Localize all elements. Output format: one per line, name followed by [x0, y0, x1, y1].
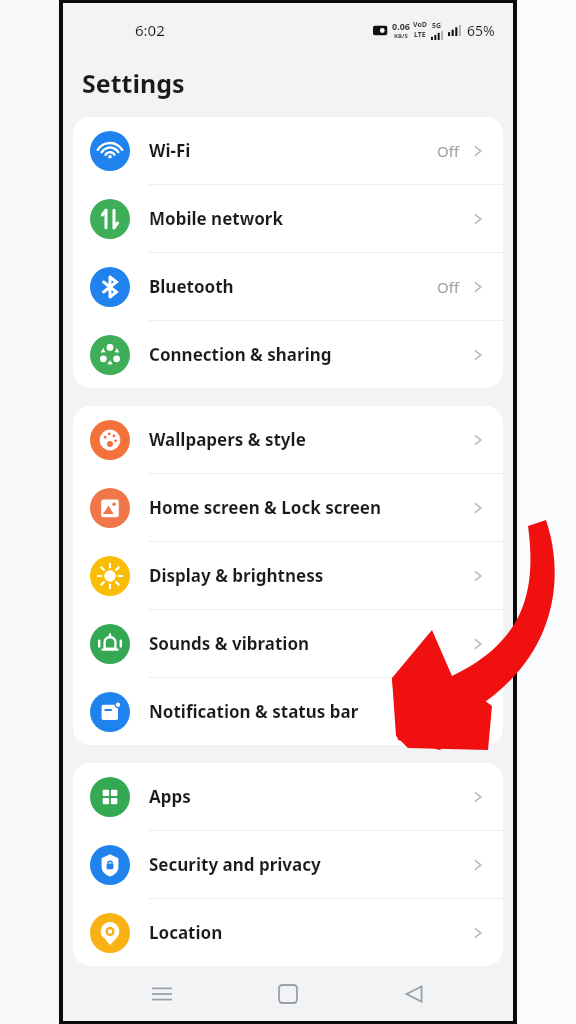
button[interactable]: Home screen & Lock screen	[73, 474, 503, 541]
button[interactable]: Bluetooth	[73, 253, 503, 320]
button[interactable]: Connection & sharing	[73, 321, 503, 388]
staticText: Wi-Fi	[149, 139, 191, 162]
button[interactable]: Apps	[73, 763, 503, 830]
button[interactable]: Display & brightness	[73, 542, 503, 609]
staticText: LTE	[414, 30, 426, 40]
button[interactable]: Sounds & vibration	[73, 610, 503, 677]
staticText: Off	[437, 277, 460, 297]
staticText: Security and privacy	[149, 853, 321, 876]
staticText: Sounds & vibration	[149, 632, 310, 655]
staticText: Bluetooth	[149, 275, 234, 298]
button[interactable]: Home	[261, 967, 315, 1021]
button[interactable]: Security and privacy	[73, 831, 503, 898]
button[interactable]: Recent apps	[135, 967, 189, 1021]
staticText: Settings	[82, 66, 185, 100]
button[interactable]: Back	[387, 967, 441, 1021]
staticText: Location	[149, 921, 223, 944]
staticText: VoD	[413, 20, 427, 30]
staticText: Connection & sharing	[149, 343, 332, 366]
staticText: 65%	[467, 21, 495, 40]
staticText: Wallpapers & style	[149, 428, 306, 451]
staticText: 0.06	[392, 20, 410, 32]
staticText: Off	[437, 141, 460, 161]
button[interactable]: Wi-Fi	[73, 117, 503, 184]
button[interactable]: Mobile network	[73, 185, 503, 252]
staticText: Mobile network	[149, 207, 284, 230]
staticText: 5G	[432, 21, 442, 31]
button[interactable]: Notification & status bar	[73, 678, 503, 745]
staticText: Home screen & Lock screen	[149, 496, 382, 519]
staticText: Display & brightness	[149, 564, 324, 587]
staticText: KB/S	[394, 32, 408, 40]
button[interactable]: Location	[73, 899, 503, 966]
staticText: 6:02	[135, 20, 165, 40]
staticText: Notification & status bar	[149, 700, 359, 723]
staticText: Apps	[149, 785, 191, 808]
button[interactable]: Wallpapers & style	[73, 406, 503, 473]
